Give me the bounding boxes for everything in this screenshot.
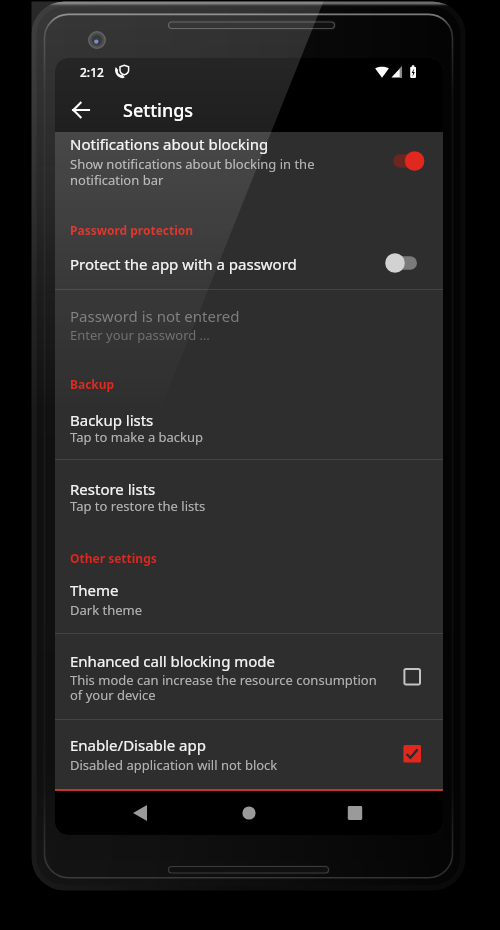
button[interactable] (55, 719, 443, 789)
button[interactable]: Disabled checkbox (397, 662, 427, 692)
button[interactable]: Notifications toggle (385, 147, 427, 175)
staticText: Notifications about blocking (70, 134, 269, 154)
button[interactable] (55, 634, 443, 718)
button[interactable]: Back (118, 792, 162, 834)
staticText: 2:12 (80, 64, 104, 80)
staticText: Restore lists (70, 479, 156, 499)
staticText: Show notifications about blocking in the… (70, 155, 315, 189)
staticText: Protect the app with a password (70, 254, 297, 274)
button[interactable] (55, 240, 443, 288)
staticText: Enable/Disable app (70, 735, 206, 755)
staticText: Tap to restore the lists (70, 497, 206, 515)
button[interactable] (55, 459, 443, 520)
staticText: Settings (123, 98, 194, 123)
button[interactable]: Back (61, 89, 103, 131)
staticText: Disabled application will not block (70, 756, 278, 774)
staticText: Backup (70, 376, 115, 392)
staticText: Password is not entered (70, 306, 240, 326)
button[interactable]: Recents (333, 792, 377, 834)
staticText: Enter your password … (70, 326, 210, 344)
staticText: Tap to make a backup (70, 428, 204, 446)
button[interactable] (55, 570, 443, 632)
staticText: Theme (70, 580, 119, 600)
staticText: Enhanced call blocking mode (70, 651, 276, 671)
button[interactable]: Enabled checkbox (397, 739, 427, 769)
staticText: Other settings (70, 550, 157, 566)
button[interactable] (55, 289, 443, 350)
staticText: Dark theme (70, 601, 143, 619)
staticText: This mode can increase the resource cons… (70, 671, 377, 704)
button[interactable]: Home (227, 792, 271, 834)
button[interactable] (55, 400, 443, 458)
button[interactable]: Password toggle (385, 249, 427, 277)
staticText: Backup lists (70, 410, 154, 430)
staticText: Password protection (70, 222, 194, 238)
button[interactable] (55, 132, 443, 200)
